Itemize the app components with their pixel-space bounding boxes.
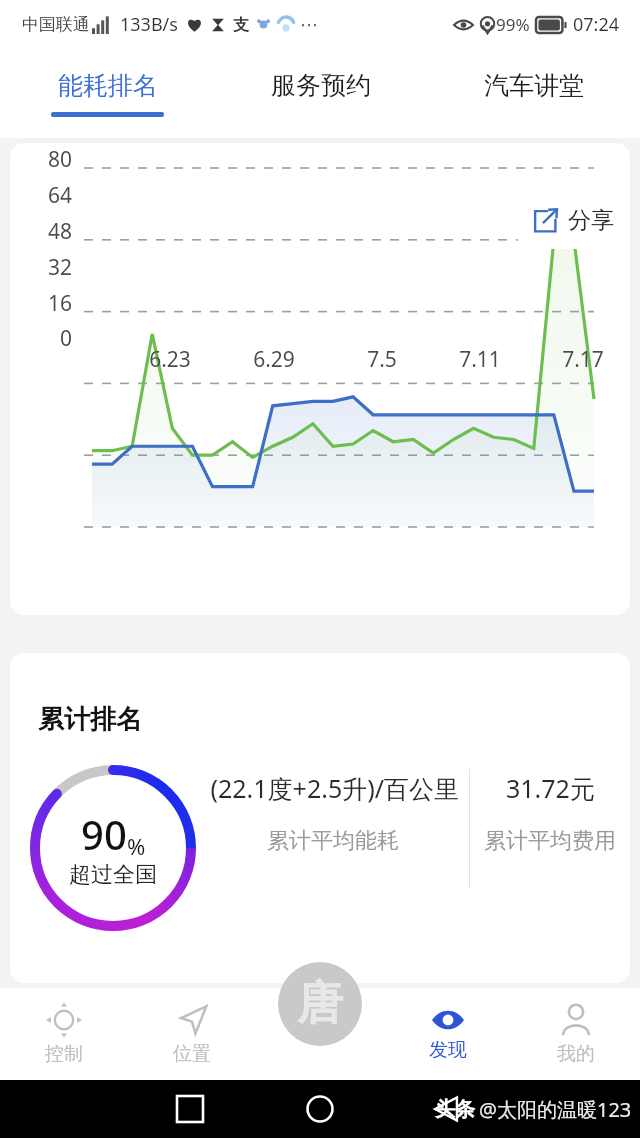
button[interactable]: Back xyxy=(433,1096,459,1122)
staticText: 07:24 xyxy=(573,12,620,37)
staticText: 唐 xyxy=(297,975,343,1033)
button[interactable]: 能耗排名 xyxy=(0,48,214,138)
staticText: 16 xyxy=(32,289,72,318)
staticText: % xyxy=(127,831,146,861)
button[interactable]: 发现 xyxy=(384,988,512,1080)
staticText: 我的 xyxy=(557,1042,595,1066)
staticText: 0 xyxy=(32,324,72,353)
staticText: 累计平均能耗 xyxy=(267,827,399,855)
staticText: 累计平均费用 xyxy=(484,827,616,855)
button[interactable]: Home xyxy=(306,1095,334,1123)
staticText: 133B/s xyxy=(120,12,178,37)
button[interactable]: 控制 xyxy=(0,988,128,1080)
staticText: 7.17 xyxy=(551,345,615,374)
staticText: (22.1度+2.5升)/百公里 xyxy=(206,771,459,805)
staticText: 99% xyxy=(496,13,530,36)
button[interactable]: 汽车讲堂 xyxy=(427,48,640,138)
staticText: ⋯ xyxy=(300,14,318,35)
staticText: 超过全国 xyxy=(69,861,157,889)
other: 位置 xyxy=(175,1003,209,1037)
other: 我的 xyxy=(559,1003,593,1037)
staticText: 6.29 xyxy=(242,345,306,374)
staticText: 头条 xyxy=(435,1097,475,1122)
button[interactable]: 位置 xyxy=(128,988,256,1080)
staticText: 控制 xyxy=(45,1042,83,1066)
staticText: 支 xyxy=(233,15,249,35)
staticText: @太阳的温暖123 xyxy=(479,1096,632,1123)
staticText: 位置 xyxy=(173,1042,211,1066)
button[interactable]: 唐 xyxy=(278,962,362,1046)
other: 控制 xyxy=(47,1003,81,1037)
other: 发现 xyxy=(431,1007,465,1033)
staticText: 31.72元 xyxy=(506,771,595,805)
staticText: 中国联通 xyxy=(22,14,90,35)
staticText: 服务预约 xyxy=(271,70,371,101)
button[interactable]: 服务预约 xyxy=(214,48,427,138)
staticText: 发现 xyxy=(429,1038,467,1062)
button[interactable]: Recents xyxy=(177,1096,203,1122)
staticText: 48 xyxy=(32,217,72,246)
staticText: 7.11 xyxy=(448,345,512,374)
staticText: 7.5 xyxy=(350,345,414,374)
staticText: 80 xyxy=(32,145,72,174)
staticText: 累计排名 xyxy=(38,703,142,736)
button[interactable]: Share xyxy=(510,191,630,249)
staticText: 6.23 xyxy=(138,345,202,374)
staticText: 汽车讲堂 xyxy=(484,70,584,101)
staticText: 分享 xyxy=(568,206,614,235)
staticText: 32 xyxy=(32,253,72,282)
button[interactable]: 我的 xyxy=(512,988,640,1080)
other: Share xyxy=(532,208,558,234)
staticText: 90 xyxy=(81,807,127,861)
staticText: 64 xyxy=(32,181,72,210)
staticText: 能耗排名 xyxy=(58,70,158,101)
